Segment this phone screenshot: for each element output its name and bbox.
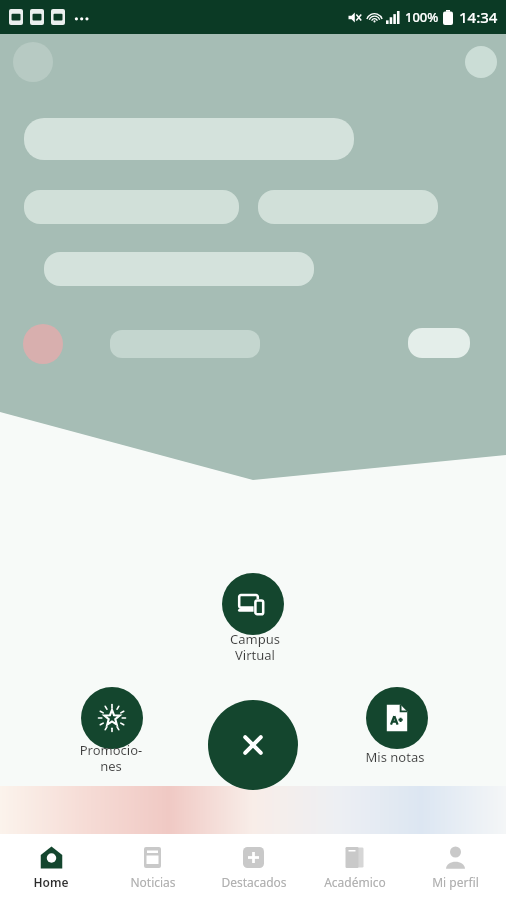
button[interactable] <box>222 573 284 635</box>
button[interactable]: Destacados <box>203 834 304 900</box>
button[interactable]: Académico <box>304 834 405 900</box>
staticText: Mi perfil <box>432 874 479 890</box>
staticText: Destacados <box>221 874 287 890</box>
staticText: 100% <box>405 8 439 26</box>
staticText: Mis notas <box>340 748 450 766</box>
staticText: 14:34 <box>459 7 498 27</box>
button[interactable]: Cerrar menú <box>208 700 298 790</box>
button[interactable] <box>81 687 143 749</box>
staticText: Promocio- nes <box>56 741 166 774</box>
staticText: Académico <box>324 874 386 890</box>
button[interactable]: Noticias <box>102 834 203 900</box>
staticText: Noticias <box>130 874 176 890</box>
staticText: Campus Virtual <box>205 630 305 663</box>
button[interactable] <box>366 687 428 749</box>
staticText: Home <box>33 874 69 890</box>
button[interactable]: Mi perfil <box>405 834 506 900</box>
button[interactable]: Home <box>0 834 102 900</box>
